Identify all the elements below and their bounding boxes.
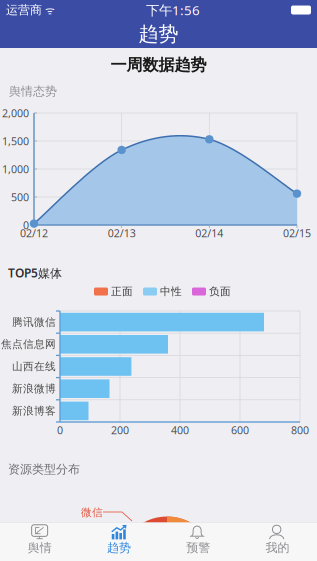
staticText: 腾讯微信 bbox=[12, 315, 56, 329]
staticText: 600 bbox=[231, 423, 249, 437]
staticText: 正面 bbox=[111, 285, 133, 298]
staticText: 我的 bbox=[265, 540, 289, 555]
staticText: 02/15 bbox=[283, 226, 311, 240]
staticText: 800 bbox=[291, 423, 309, 437]
staticText: 02/14 bbox=[195, 226, 223, 240]
staticText: 焦点信息网 bbox=[1, 338, 56, 351]
staticText: 微信 bbox=[81, 506, 103, 519]
staticText: 200 bbox=[111, 423, 129, 437]
staticText: 2,000 bbox=[2, 106, 29, 120]
staticText: 舆情 bbox=[28, 540, 52, 555]
button[interactable]: 舆情 bbox=[0, 522, 79, 561]
staticText: 预警 bbox=[186, 540, 210, 555]
staticText: 1,500 bbox=[2, 134, 29, 148]
button[interactable]: 预警 bbox=[158, 522, 238, 561]
staticText: 山西在线 bbox=[12, 360, 56, 373]
staticText: 1,000 bbox=[2, 162, 29, 176]
staticText: 0 bbox=[57, 423, 63, 437]
staticText: TOP5媒体 bbox=[8, 265, 62, 281]
staticText: 下午1:56 bbox=[146, 1, 200, 19]
staticText: 400 bbox=[171, 423, 189, 437]
staticText: 0 bbox=[23, 218, 29, 232]
staticText: 运营商 bbox=[6, 3, 42, 17]
staticText: 趋势 bbox=[138, 22, 178, 46]
button[interactable]: 趋势 bbox=[79, 522, 158, 561]
staticText: 资源类型分布 bbox=[8, 462, 80, 477]
staticText: 新浪博客 bbox=[12, 404, 56, 417]
staticText: 中性 bbox=[160, 285, 182, 298]
button[interactable]: 我的 bbox=[238, 522, 317, 561]
staticText: 02/13 bbox=[108, 226, 136, 240]
staticText: 舆情态势 bbox=[9, 84, 57, 99]
staticText: 500 bbox=[11, 190, 29, 204]
staticText: 新浪微博 bbox=[12, 382, 56, 395]
staticText: ᯤ bbox=[42, 3, 55, 17]
staticText: 趋势 bbox=[107, 540, 131, 555]
staticText: 负面 bbox=[209, 285, 231, 298]
staticText: 02/12 bbox=[20, 226, 48, 240]
staticText: 一周数据趋势 bbox=[110, 55, 206, 75]
